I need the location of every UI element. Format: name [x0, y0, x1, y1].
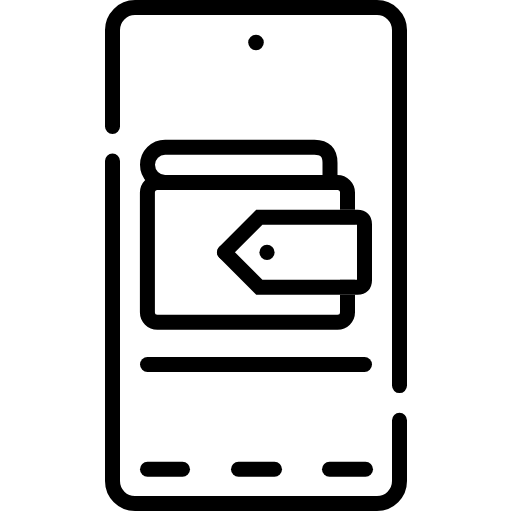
button[interactable]: Mobile wallet payment: [0, 0, 512, 512]
